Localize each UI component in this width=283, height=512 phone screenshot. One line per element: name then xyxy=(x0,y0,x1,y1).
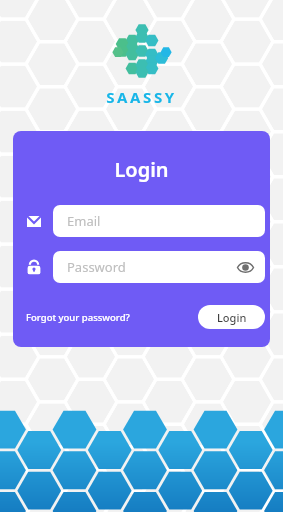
other: Password xyxy=(26,259,42,275)
button[interactable]: Password xyxy=(53,251,265,283)
button[interactable]: Login xyxy=(198,305,265,329)
staticText: Forgot your password? xyxy=(26,311,130,324)
button[interactable]: Email xyxy=(53,205,265,237)
staticText: Email xyxy=(67,212,101,230)
other: Email xyxy=(26,215,42,228)
staticText: Login xyxy=(13,156,270,183)
button[interactable]: Forgot your password? xyxy=(26,307,130,328)
button[interactable]: Show password xyxy=(235,257,255,277)
staticText: SAASSY xyxy=(106,87,177,107)
staticText: Password xyxy=(67,258,126,276)
staticText: Login xyxy=(217,310,247,325)
